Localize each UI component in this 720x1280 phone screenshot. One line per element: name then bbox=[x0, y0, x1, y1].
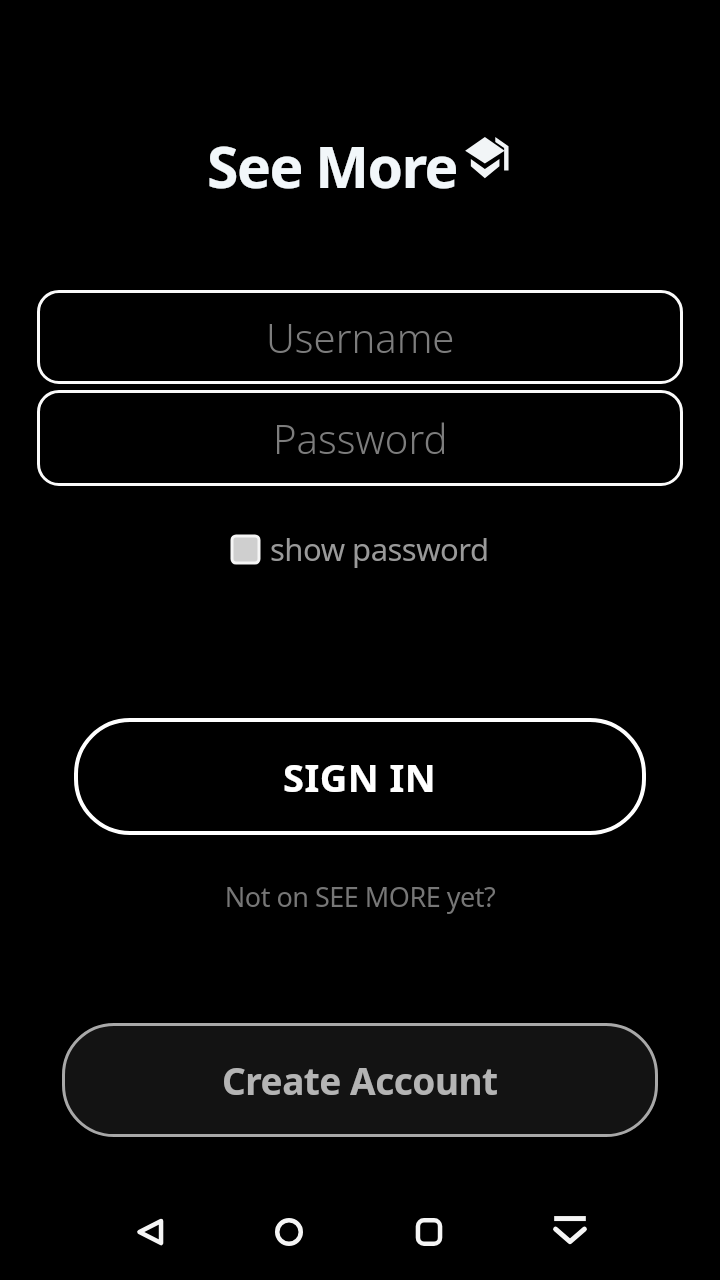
button[interactable] bbox=[546, 1208, 594, 1256]
button[interactable] bbox=[126, 1208, 174, 1256]
button[interactable]: SIGN IN bbox=[74, 718, 646, 835]
staticText: Password bbox=[273, 411, 448, 465]
button[interactable] bbox=[405, 1208, 453, 1256]
staticText: See More bbox=[207, 127, 458, 203]
button[interactable] bbox=[265, 1208, 313, 1256]
button[interactable]: show password bbox=[0, 528, 720, 570]
staticText: Create Account bbox=[222, 1055, 498, 1105]
button[interactable]: Password bbox=[37, 390, 683, 486]
staticText: Not on SEE MORE yet? bbox=[0, 878, 720, 915]
button[interactable]: Username bbox=[37, 290, 683, 384]
staticText: Username bbox=[266, 310, 455, 364]
staticText: SIGN IN bbox=[283, 751, 437, 803]
button[interactable]: Create Account bbox=[62, 1023, 658, 1137]
staticText: show password bbox=[270, 528, 489, 570]
